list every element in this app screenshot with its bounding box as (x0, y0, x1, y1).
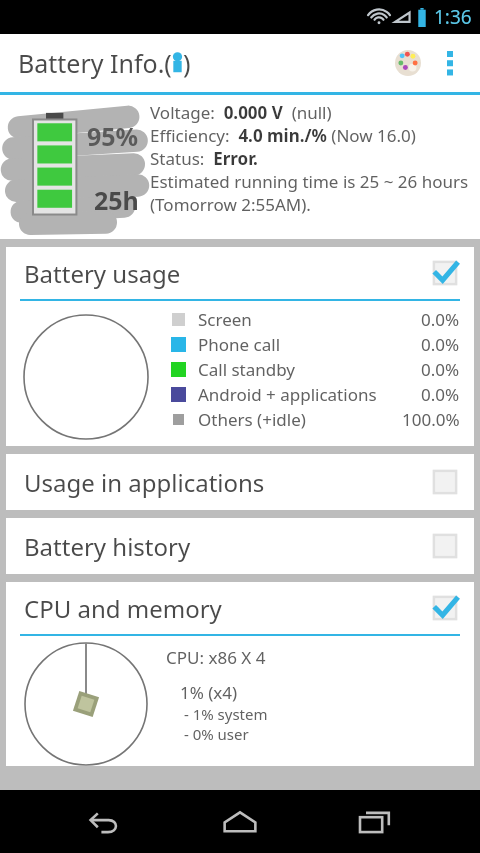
button[interactable]: More options (430, 43, 470, 83)
staticText: Battery usage (24, 257, 430, 290)
staticText: 0.0% (421, 358, 460, 381)
staticText: 95% (87, 119, 139, 153)
staticText: 100.0% (402, 408, 460, 431)
staticText: Voltage: 0.000 V (null) (150, 101, 332, 124)
staticText: - 1% system (180, 704, 268, 724)
staticText: Others (+idle) (198, 408, 402, 431)
button[interactable]: Battery history (6, 518, 474, 574)
staticText: ) (183, 46, 191, 80)
staticText: 0.0% (421, 383, 460, 406)
staticText: 25h (94, 183, 139, 217)
staticText: Screen (198, 308, 421, 331)
staticText: Battery history (24, 530, 430, 563)
staticText: Battery Info.( (18, 46, 172, 80)
staticText: 0.0% (421, 308, 460, 331)
staticText: 0.0% (421, 333, 460, 356)
staticText: Call standby (198, 358, 421, 381)
staticText: CPU and memory (24, 592, 430, 625)
button[interactable]: Back (75, 792, 135, 852)
staticText: Usage in applications (24, 466, 430, 499)
button[interactable]: Battery usage (6, 247, 474, 446)
button[interactable]: Usage in applications (6, 454, 474, 510)
staticText: Android + applications (198, 383, 421, 406)
staticText: Status: Error. (150, 147, 258, 170)
staticText: - 0% user (180, 724, 249, 744)
button[interactable]: Theme palette (386, 41, 430, 85)
button[interactable]: CPU and memory (6, 582, 474, 766)
button[interactable]: Home (210, 792, 270, 852)
staticText: 1% (x4) (180, 681, 238, 704)
staticText: Phone call (198, 333, 421, 356)
staticText: 1:36 (434, 4, 472, 30)
staticText: CPU: x86 X 4 (166, 646, 266, 669)
staticText: Estimated running time is 25 ~ 26 hours … (150, 170, 472, 216)
staticText: Efficiency: 4.0 min./% (Now 16.0) (150, 124, 416, 147)
button[interactable]: Recent apps (345, 792, 405, 852)
